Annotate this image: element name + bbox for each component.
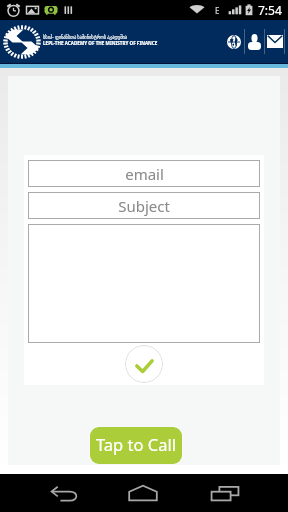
staticText: E xyxy=(215,5,220,16)
button[interactable]: Home xyxy=(107,474,179,512)
button[interactable]: Website xyxy=(223,20,244,63)
staticText: email xyxy=(125,164,164,184)
staticText: LEPL-THE ACADEMY OF THE MINISTRY OF FINA… xyxy=(43,40,158,46)
button[interactable]: Message xyxy=(28,224,260,343)
button[interactable]: email xyxy=(28,160,260,187)
button[interactable]: Tap to Call xyxy=(90,427,182,464)
button[interactable]: Recent apps xyxy=(189,474,261,512)
button[interactable]: Send xyxy=(125,345,163,383)
staticText: Subject xyxy=(118,196,170,216)
button[interactable]: Email xyxy=(265,20,284,63)
staticText: 7:54 xyxy=(258,2,282,18)
button[interactable]: Back xyxy=(28,474,100,512)
button[interactable]: Subject xyxy=(28,192,260,219)
button[interactable]: Profile xyxy=(245,20,264,63)
staticText: სსიპ- ფინანსთა სამინისტროს აკადემია xyxy=(43,34,128,40)
staticText: Tap to Call xyxy=(96,433,176,455)
